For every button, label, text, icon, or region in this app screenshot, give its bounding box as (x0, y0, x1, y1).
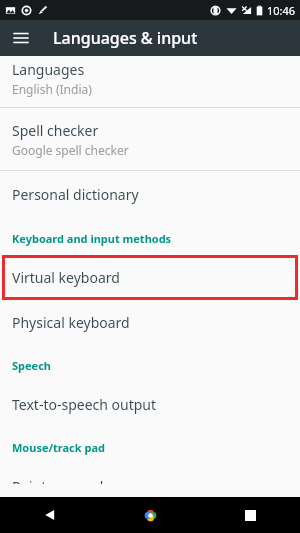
staticText: Text-to-speech output (12, 395, 157, 414)
button[interactable]: Text-to-speech output (0, 382, 300, 427)
button[interactable]: Pointer speed (0, 464, 300, 497)
staticText: Spell checker (12, 121, 99, 140)
staticText: English (India) (12, 81, 92, 97)
staticText: Languages (12, 60, 85, 79)
staticText: Google spell checker (12, 142, 129, 158)
staticText: 10:46 (267, 3, 296, 18)
button[interactable]: Recent apps (200, 497, 300, 533)
staticText: Speech (12, 358, 51, 373)
button[interactable]: Back (0, 497, 100, 533)
staticText: Keyboard and input methods (12, 231, 172, 246)
staticText: Personal dictionary (12, 185, 139, 204)
button[interactable]: Open navigation menu (5, 22, 37, 54)
button[interactable]: Virtual keyboard (2, 255, 298, 300)
button[interactable]: Languages (0, 56, 300, 107)
staticText: Virtual keyboard (12, 268, 120, 287)
staticText: Physical keyboard (12, 313, 130, 332)
button[interactable]: Personal dictionary (0, 171, 300, 218)
button[interactable]: Spell checker (0, 108, 300, 170)
button[interactable]: Physical keyboard (0, 300, 300, 345)
staticText: Pointer speed (12, 477, 104, 484)
staticText: Languages & input (53, 27, 198, 49)
button[interactable]: Home (100, 497, 200, 533)
staticText: Mouse/track pad (12, 440, 105, 455)
